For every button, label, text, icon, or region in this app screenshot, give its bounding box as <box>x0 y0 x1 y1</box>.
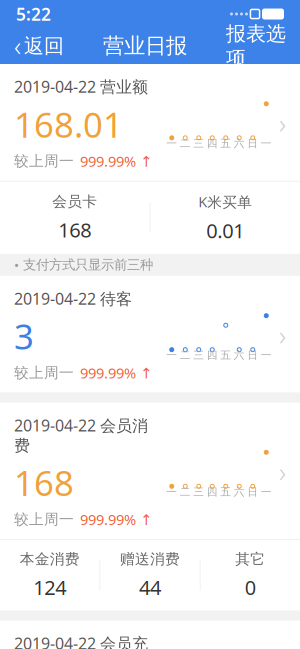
staticText: 124 <box>33 574 66 601</box>
button[interactable]: ‹ <box>4 29 74 63</box>
staticText: 0 <box>245 574 256 601</box>
staticText: 会员卡 <box>52 192 97 210</box>
staticText: › <box>279 317 286 353</box>
staticText: 2019-04-22 会员消费 <box>14 415 148 455</box>
staticText: 168 <box>58 216 91 243</box>
staticText: 999.99% ↑ <box>80 151 152 171</box>
staticText: 本金消费 <box>20 550 80 568</box>
staticText: 六 <box>234 349 245 362</box>
staticText: 四 <box>207 137 218 150</box>
staticText: 168.01 <box>14 101 123 147</box>
staticText: 168 <box>14 459 74 505</box>
staticText: 0.01 <box>206 217 244 244</box>
staticText: 六 <box>234 137 245 150</box>
staticText: 一 <box>166 349 177 362</box>
staticText: 2019-04-22 营业额 <box>14 76 148 97</box>
staticText: 二 <box>180 349 191 362</box>
staticText: 较上周一 <box>14 152 74 170</box>
button[interactable]: 2019-04-22 待客 <box>0 276 300 393</box>
staticText: 5:22 <box>16 2 51 25</box>
staticText: 一 <box>166 137 177 150</box>
staticText: 较上周一 <box>14 510 74 528</box>
staticText: › <box>279 454 286 489</box>
staticText: 较上周一 <box>14 364 74 382</box>
button[interactable]: 报表选项 <box>216 29 296 63</box>
staticText: 三 <box>193 485 204 498</box>
staticText: 其它 <box>235 550 265 568</box>
staticText: • <box>14 256 19 274</box>
staticText: 四 <box>207 485 218 498</box>
staticText: 五 <box>220 349 231 362</box>
staticText: 三 <box>193 349 204 362</box>
staticText: 支付方式只显示前三种 <box>23 257 153 273</box>
staticText: 一 <box>261 137 272 150</box>
button[interactable]: 2019-04-22 会员消费 <box>0 403 300 611</box>
staticText: 一 <box>261 349 272 362</box>
staticText: 日 <box>247 349 258 362</box>
staticText: 44 <box>139 574 161 601</box>
staticText: 999.99% ↑ <box>80 510 152 529</box>
staticText: 3 <box>14 313 34 359</box>
staticText: 五 <box>220 485 231 498</box>
staticText: 一 <box>261 485 272 498</box>
staticText: 2019-04-22 待客 <box>14 288 132 309</box>
staticText: 二 <box>180 485 191 498</box>
staticText: 五 <box>220 137 231 150</box>
staticText: ‹ <box>14 28 21 64</box>
button[interactable]: 2019-04-22 会员充值 <box>0 621 300 649</box>
staticText: 日 <box>247 485 258 498</box>
staticText: 999.99% ↑ <box>80 363 152 383</box>
staticText: 返回 <box>24 34 64 58</box>
staticText: 赠送消费 <box>120 550 180 568</box>
staticText: K米买单 <box>198 192 252 211</box>
staticText: 二 <box>180 137 191 150</box>
staticText: 日 <box>247 137 258 150</box>
staticText: 一 <box>166 485 177 498</box>
staticText: 四 <box>207 349 218 362</box>
staticText: 三 <box>193 137 204 150</box>
staticText: 报表选项 <box>226 21 286 70</box>
staticText: 营业日报 <box>103 33 187 59</box>
staticText: 2019-04-22 会员充值 <box>14 633 148 649</box>
staticText: 六 <box>234 485 245 498</box>
button[interactable]: 2019-04-22 营业额 <box>0 64 300 254</box>
staticText: › <box>279 106 286 141</box>
